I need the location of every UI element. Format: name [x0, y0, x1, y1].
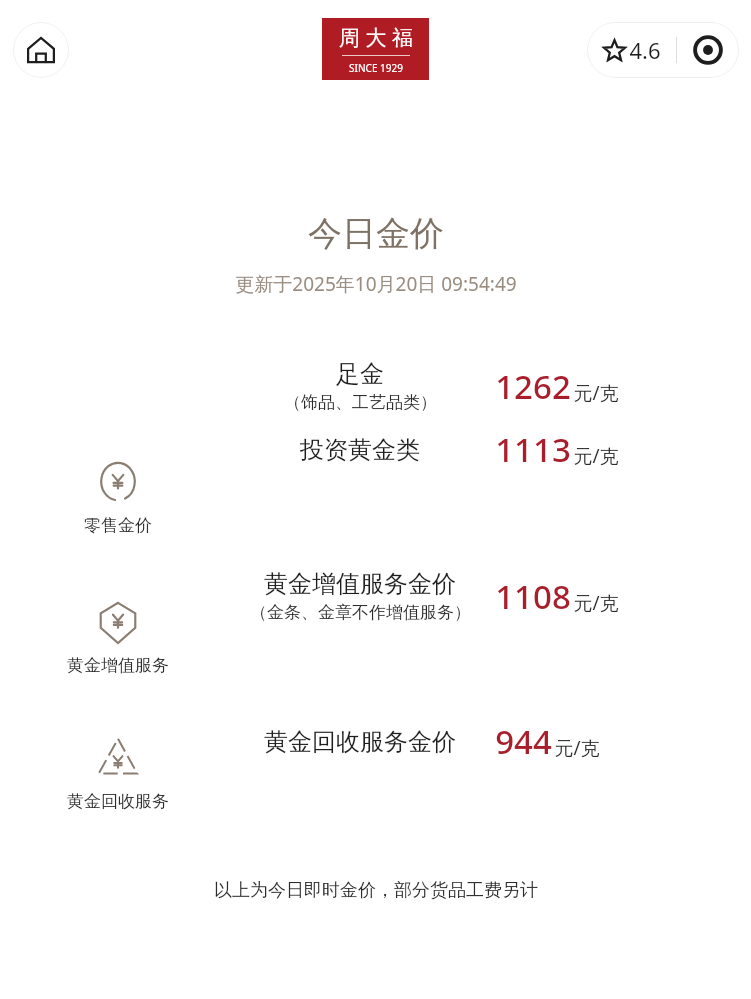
button[interactable]: Rating 4.6: [587, 22, 676, 78]
button[interactable]: More: [677, 22, 739, 78]
button[interactable]: 黄金回收服务: [0, 719, 751, 801]
staticText: 4.6: [629, 35, 661, 65]
staticText: 以上为今日即时金价，部分货品工费另计: [214, 879, 538, 902]
staticText: 1108: [495, 574, 571, 619]
staticText: 944: [495, 719, 552, 764]
button[interactable]: 周 大 福: [322, 18, 429, 80]
staticText: 黄金回收服务: [67, 791, 169, 812]
button[interactable]: 零售金价: [0, 359, 751, 511]
staticText: 黄金增值服务金价: [264, 569, 456, 599]
staticText: 黄金增值服务: [67, 655, 169, 676]
staticText: 元/克: [573, 380, 619, 406]
staticText: 足金: [336, 359, 384, 389]
staticText: 零售金价: [84, 515, 152, 536]
staticText: 更新于2025年10月20日 09:54:49: [235, 271, 517, 297]
staticText: 元/克: [573, 590, 619, 616]
staticText: 黄金回收服务金价: [264, 727, 456, 757]
staticText: SINCE 1929: [349, 61, 403, 75]
staticText: （金条、金章不作增值服务）: [250, 602, 471, 623]
staticText: 元/克: [573, 443, 619, 469]
staticText: 元/克: [554, 735, 600, 761]
button[interactable]: 黄金增值服务: [0, 569, 751, 665]
button[interactable]: Home: [13, 22, 69, 78]
staticText: （饰品、工艺品类）: [284, 392, 437, 413]
staticText: 投资黄金类: [300, 435, 420, 465]
staticText: 1113: [495, 427, 571, 472]
staticText: 周 大 福: [339, 23, 413, 52]
staticText: 1262: [495, 364, 571, 409]
staticText: 今日金价: [308, 212, 444, 255]
